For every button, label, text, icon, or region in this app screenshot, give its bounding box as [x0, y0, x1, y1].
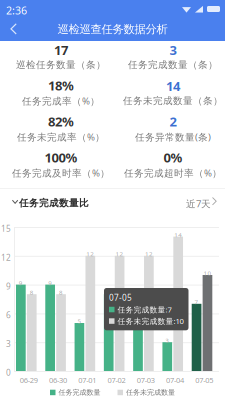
- staticText: 7: [195, 298, 199, 306]
- staticText: 07-04: [166, 375, 184, 385]
- staticText: 任务未完成数量:10: [117, 316, 183, 326]
- staticText: 100%: [44, 149, 77, 166]
- staticText: 06-30: [49, 375, 67, 385]
- staticText: 9: [19, 279, 23, 287]
- staticText: 15: [1, 223, 11, 234]
- staticText: 8: [30, 288, 34, 297]
- button[interactable]: 近7天: [186, 188, 225, 214]
- staticText: 3: [169, 41, 176, 59]
- staticText: 2: [169, 113, 176, 130]
- button[interactable]: Back: [0, 17, 34, 41]
- staticText: 任务完成数量:7: [117, 304, 171, 315]
- staticText: 6: [6, 309, 11, 321]
- staticText: 07-01: [78, 375, 96, 385]
- staticText: 任务完成数量比: [19, 197, 89, 209]
- staticText: 3: [6, 338, 11, 349]
- staticText: 07-03: [137, 375, 155, 385]
- staticText: 近7天: [186, 197, 211, 210]
- staticText: 12: [1, 252, 11, 263]
- staticText: 14: [166, 77, 180, 95]
- staticText: 0%: [163, 149, 182, 166]
- staticText: 9: [48, 279, 52, 287]
- staticText: 巡检巡查任务数据分析: [57, 22, 167, 36]
- staticText: 0: [6, 367, 11, 378]
- staticText: 06-29: [20, 375, 38, 385]
- staticText: 任务未完成率（%）: [17, 130, 105, 143]
- staticText: 07-05: [109, 292, 132, 303]
- staticText: 12: [116, 250, 124, 258]
- staticText: 82%: [48, 113, 74, 130]
- staticText: 3: [165, 336, 169, 345]
- staticText: 8: [107, 288, 111, 297]
- staticText: 18%: [48, 77, 74, 94]
- staticText: 10: [203, 269, 211, 277]
- staticText: 2:36: [6, 3, 27, 17]
- staticText: 任务异常数量(条): [135, 130, 211, 143]
- staticText: 5: [77, 317, 81, 325]
- staticText: 9: [6, 281, 11, 292]
- staticText: 8: [59, 288, 63, 297]
- staticText: 07-05: [195, 375, 213, 385]
- staticText: 任务完成率（%）: [22, 94, 100, 107]
- staticText: 任务完成数量（条）: [128, 59, 218, 71]
- staticText: 07-02: [107, 375, 125, 385]
- staticText: 任务完成数量: [58, 388, 100, 397]
- staticText: 任务未完成数量（条）: [123, 95, 223, 107]
- staticText: 17: [54, 41, 68, 59]
- staticText: 14: [174, 231, 182, 239]
- staticText: 任务完成及时率（%）: [12, 166, 110, 179]
- staticText: 12: [145, 250, 153, 258]
- staticText: 12: [86, 250, 94, 258]
- staticText: 任务未完成数量: [126, 388, 175, 397]
- staticText: 巡检任务数量（条）: [16, 59, 106, 71]
- staticText: 任务完成超时率（%）: [124, 166, 222, 179]
